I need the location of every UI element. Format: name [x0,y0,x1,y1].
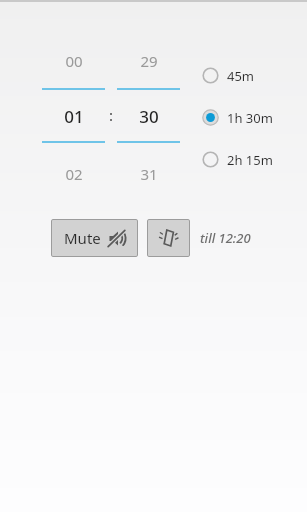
staticText: 00 [65,51,83,71]
staticText: till 12:20 [200,229,251,247]
button[interactable]: 2h 15m [202,148,302,171]
button[interactable]: 02 [42,161,105,187]
staticText: 30 [139,105,159,128]
button[interactable]: 00 [42,48,105,74]
staticText: 2h 15m [227,151,273,169]
staticText: : [109,105,114,125]
staticText: 45m [227,67,255,85]
button[interactable]: 29 [117,48,180,74]
staticText: Mute [64,228,101,248]
staticText: 29 [140,51,158,71]
staticText: 31 [140,164,158,184]
button[interactable]: 01 [42,103,105,129]
staticText: 1h 30m [227,109,273,127]
button[interactable]: 30 [117,103,180,129]
staticText: 02 [65,164,83,184]
staticText: 01 [64,105,84,128]
button[interactable]: 1h 30m [202,106,302,129]
button[interactable]: Vibrate [147,219,190,257]
button[interactable]: 45m [202,64,302,87]
button[interactable]: 31 [117,161,180,187]
button[interactable]: Mute [51,219,138,257]
